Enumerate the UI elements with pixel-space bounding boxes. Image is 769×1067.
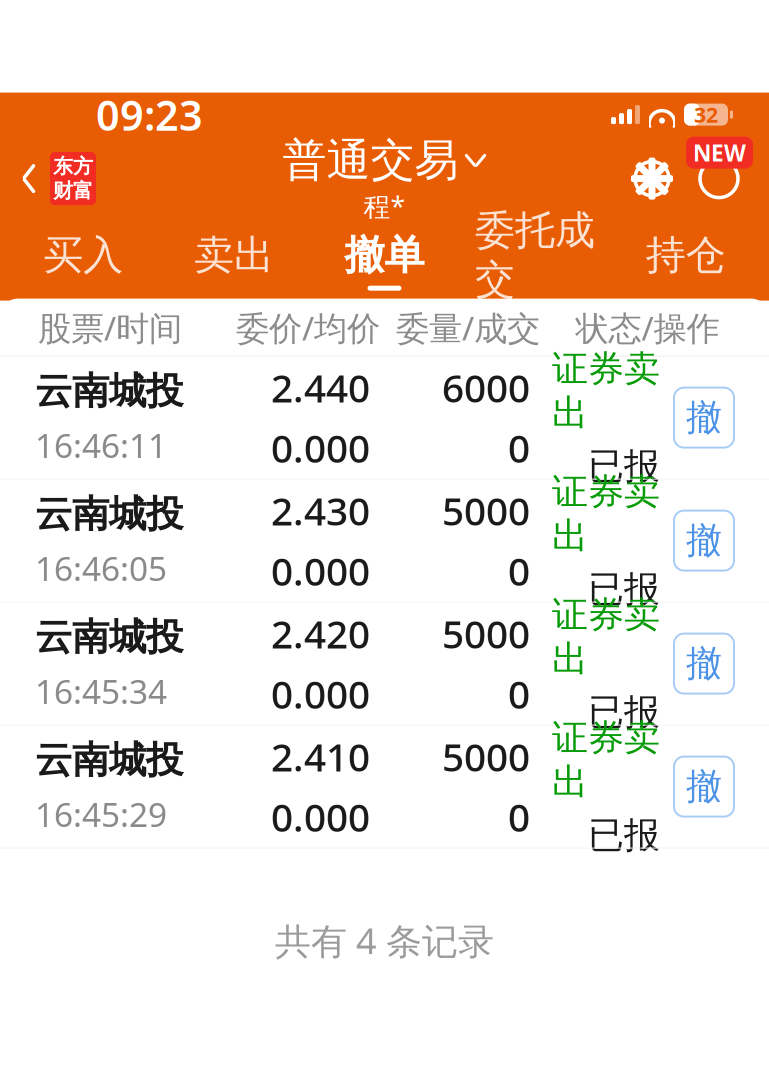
staticText: 云南城投 bbox=[35, 737, 183, 783]
staticText: 撤 bbox=[686, 641, 722, 686]
staticText: 撤 bbox=[686, 395, 722, 440]
staticText: 16:45:29 bbox=[35, 792, 167, 836]
staticText: 0.000 bbox=[271, 422, 370, 473]
staticText: 卖出 bbox=[194, 230, 274, 280]
staticText: 财富 bbox=[53, 179, 93, 203]
button[interactable]: 撤单 bbox=[674, 634, 734, 694]
staticText: 已报 bbox=[588, 567, 660, 611]
staticText: 2.430 bbox=[271, 485, 370, 536]
staticText: 云南城投 bbox=[35, 614, 183, 660]
button[interactable]: 刷新 bbox=[691, 151, 747, 207]
staticText: 证券卖出 bbox=[552, 716, 660, 804]
button[interactable]: 撤单 bbox=[674, 511, 734, 571]
staticText: 2.410 bbox=[271, 731, 370, 782]
staticText: 0.000 bbox=[271, 668, 370, 719]
staticText: 16:46:11 bbox=[35, 423, 167, 467]
button[interactable]: 云南城投 bbox=[0, 480, 769, 603]
staticText: 委价/均价 bbox=[236, 305, 380, 350]
button[interactable]: 卖出 bbox=[159, 226, 309, 295]
staticText: 5000 bbox=[442, 731, 530, 782]
staticText: 16:45:34 bbox=[35, 669, 167, 713]
staticText: 0.000 bbox=[271, 545, 370, 596]
button[interactable]: 撤单 bbox=[674, 388, 734, 448]
staticText: 0 bbox=[508, 791, 530, 842]
staticText: 09:23 bbox=[96, 87, 203, 142]
staticText: 已报 bbox=[588, 690, 660, 734]
staticText: 32 bbox=[694, 100, 718, 129]
staticText: 云南城投 bbox=[35, 368, 183, 414]
staticText: 0 bbox=[508, 545, 530, 596]
staticText: 撤 bbox=[686, 518, 722, 563]
staticText: 0.000 bbox=[271, 791, 370, 842]
staticText: 状态/操作 bbox=[575, 305, 719, 350]
button[interactable]: 云南城投 bbox=[0, 726, 769, 849]
staticText: 委托成交 bbox=[475, 206, 595, 304]
staticText: 2.420 bbox=[271, 608, 370, 659]
staticText: 0 bbox=[508, 668, 530, 719]
staticText: 0 bbox=[508, 422, 530, 473]
staticText: 6000 bbox=[442, 362, 530, 413]
button[interactable]: 撤单 bbox=[309, 226, 460, 295]
staticText: 股票/时间 bbox=[38, 305, 182, 350]
button[interactable]: 持仓 bbox=[610, 226, 761, 295]
staticText: 证券卖出 bbox=[552, 470, 660, 558]
button[interactable]: 云南城投 bbox=[0, 357, 769, 480]
staticText: 买入 bbox=[43, 230, 123, 280]
staticText: 证券卖出 bbox=[552, 347, 660, 435]
staticText: 共有 4 条记录 bbox=[275, 917, 494, 964]
staticText: 撤 bbox=[686, 764, 722, 809]
button[interactable]: 买入 bbox=[8, 226, 159, 295]
staticText: 证券卖出 bbox=[552, 593, 660, 681]
staticText: 持仓 bbox=[646, 230, 726, 280]
staticText: 普通交易 bbox=[282, 133, 458, 187]
button[interactable]: 委托成交 bbox=[460, 202, 610, 319]
button[interactable]: 返回 东方财富 bbox=[0, 144, 96, 213]
button[interactable]: 撤单 bbox=[674, 757, 734, 817]
staticText: 已报 bbox=[588, 444, 660, 488]
staticText: 委量/成交 bbox=[396, 305, 540, 350]
staticText: 5000 bbox=[442, 485, 530, 536]
staticText: 5000 bbox=[442, 608, 530, 659]
staticText: 程* bbox=[363, 188, 405, 224]
staticText: 已报 bbox=[588, 813, 660, 857]
staticText: 东方 bbox=[53, 154, 93, 179]
staticText: NEW bbox=[693, 138, 746, 168]
staticText: 撤单 bbox=[344, 230, 424, 280]
staticText: 2.440 bbox=[271, 362, 370, 413]
staticText: 云南城投 bbox=[35, 491, 183, 537]
button[interactable]: 云南城投 bbox=[0, 603, 769, 726]
button[interactable]: 设置 bbox=[624, 151, 680, 207]
staticText: 16:46:05 bbox=[35, 546, 167, 590]
